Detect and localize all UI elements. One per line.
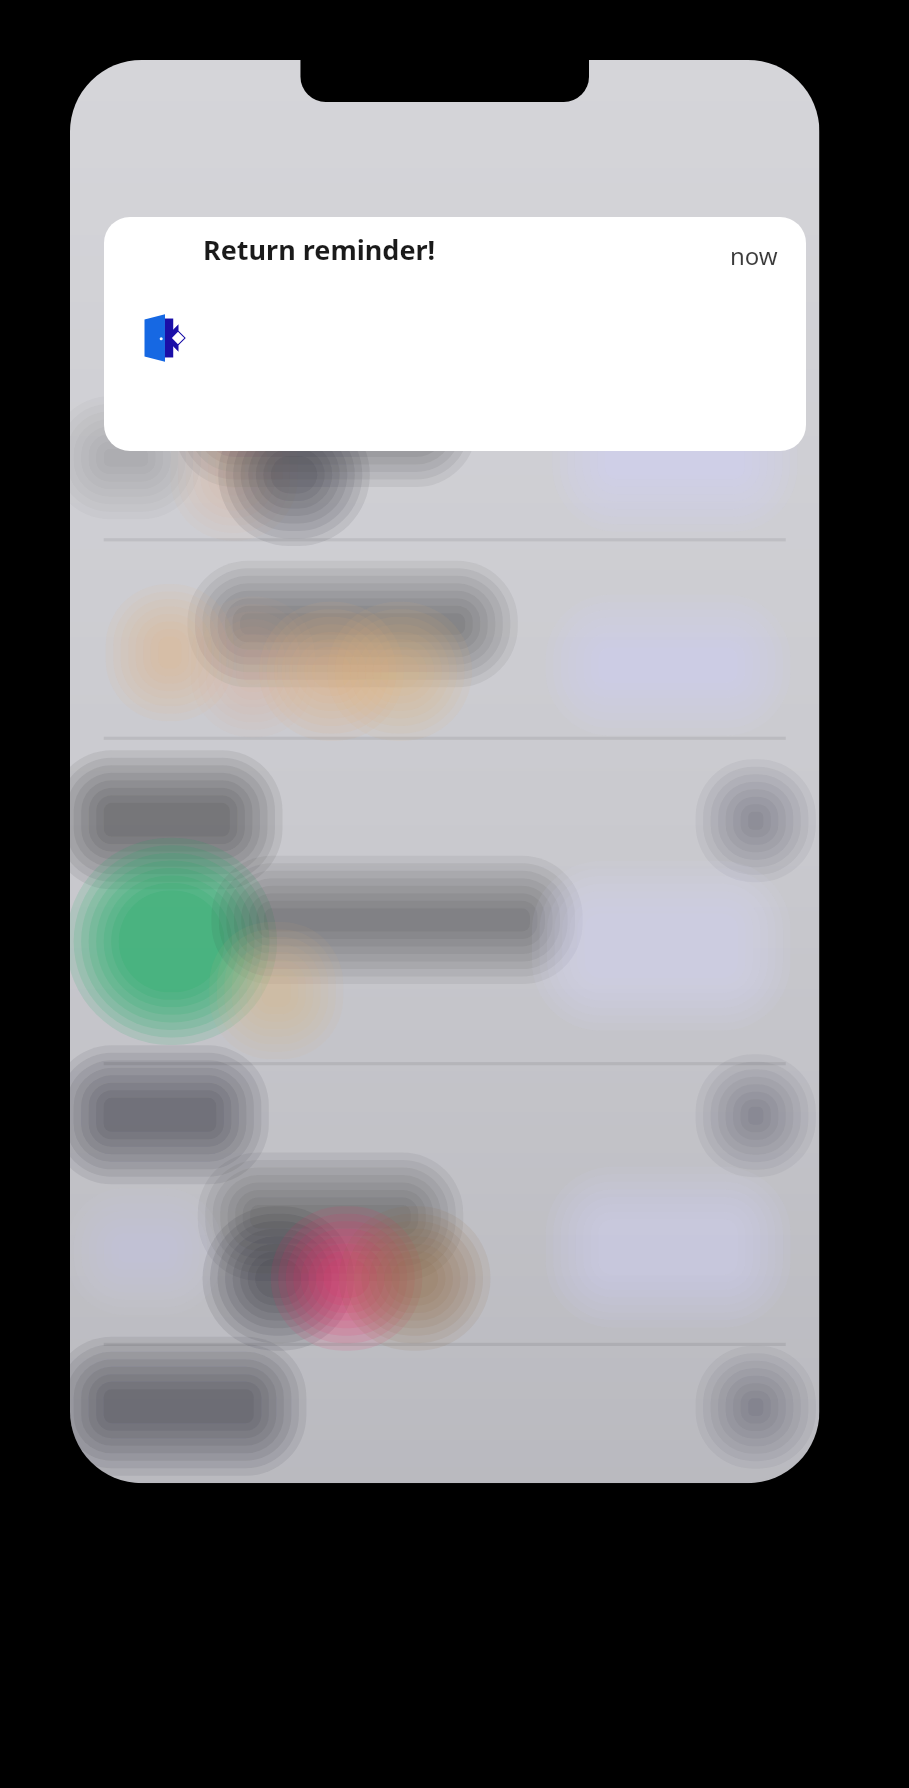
staticText: now [730,239,778,272]
staticText: Return reminder! [203,231,436,268]
other: Returns app icon [129,305,195,371]
button[interactable]: Returns app icon [104,217,806,451]
